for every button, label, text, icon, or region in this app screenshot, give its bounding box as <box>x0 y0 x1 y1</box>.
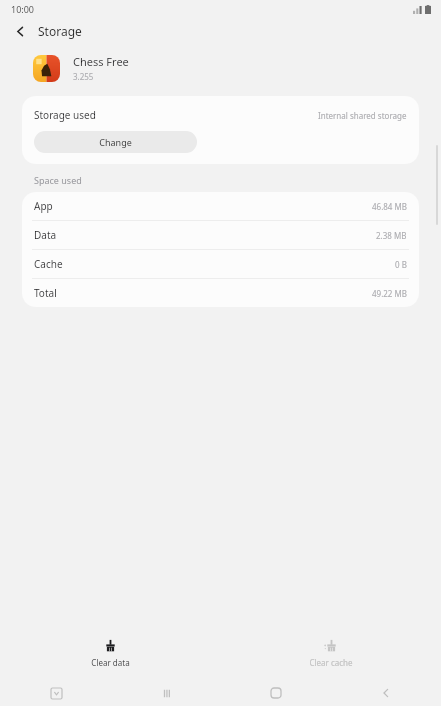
button[interactable]: Home <box>264 681 288 705</box>
staticText: Storage used <box>34 108 96 122</box>
staticText: 46.84 MB <box>372 201 407 212</box>
button[interactable]: Cache <box>22 250 419 278</box>
button[interactable]: Clear data <box>77 637 144 670</box>
staticText: Total <box>34 286 57 300</box>
button[interactable]: Change <box>34 131 197 153</box>
staticText: Change <box>99 136 132 148</box>
button[interactable]: Chess Free <box>33 54 441 82</box>
button[interactable]: Keyboard <box>44 681 68 705</box>
staticText: 10:00 <box>11 3 35 15</box>
button[interactable]: Clear cache <box>295 637 367 670</box>
staticText: Data <box>34 228 57 242</box>
button[interactable]: Data <box>22 221 419 249</box>
staticText: Space used <box>34 174 82 186</box>
staticText: 2.38 MB <box>376 230 407 241</box>
staticText: 0 B <box>395 259 407 270</box>
staticText: Cache <box>34 257 63 271</box>
staticText: Storage <box>38 23 82 39</box>
staticText: Clear data <box>91 657 130 668</box>
button[interactable]: Back <box>8 19 32 43</box>
staticText: App <box>34 199 53 213</box>
staticText: Internal shared storage <box>318 110 407 121</box>
button[interactable]: App <box>22 192 419 220</box>
staticText: Clear cache <box>309 657 353 668</box>
staticText: Chess Free <box>73 54 129 69</box>
button[interactable]: Back <box>374 681 398 705</box>
staticText: 3.255 <box>73 71 94 82</box>
staticText: 49.22 MB <box>372 288 407 299</box>
button[interactable]: Recents <box>154 681 178 705</box>
